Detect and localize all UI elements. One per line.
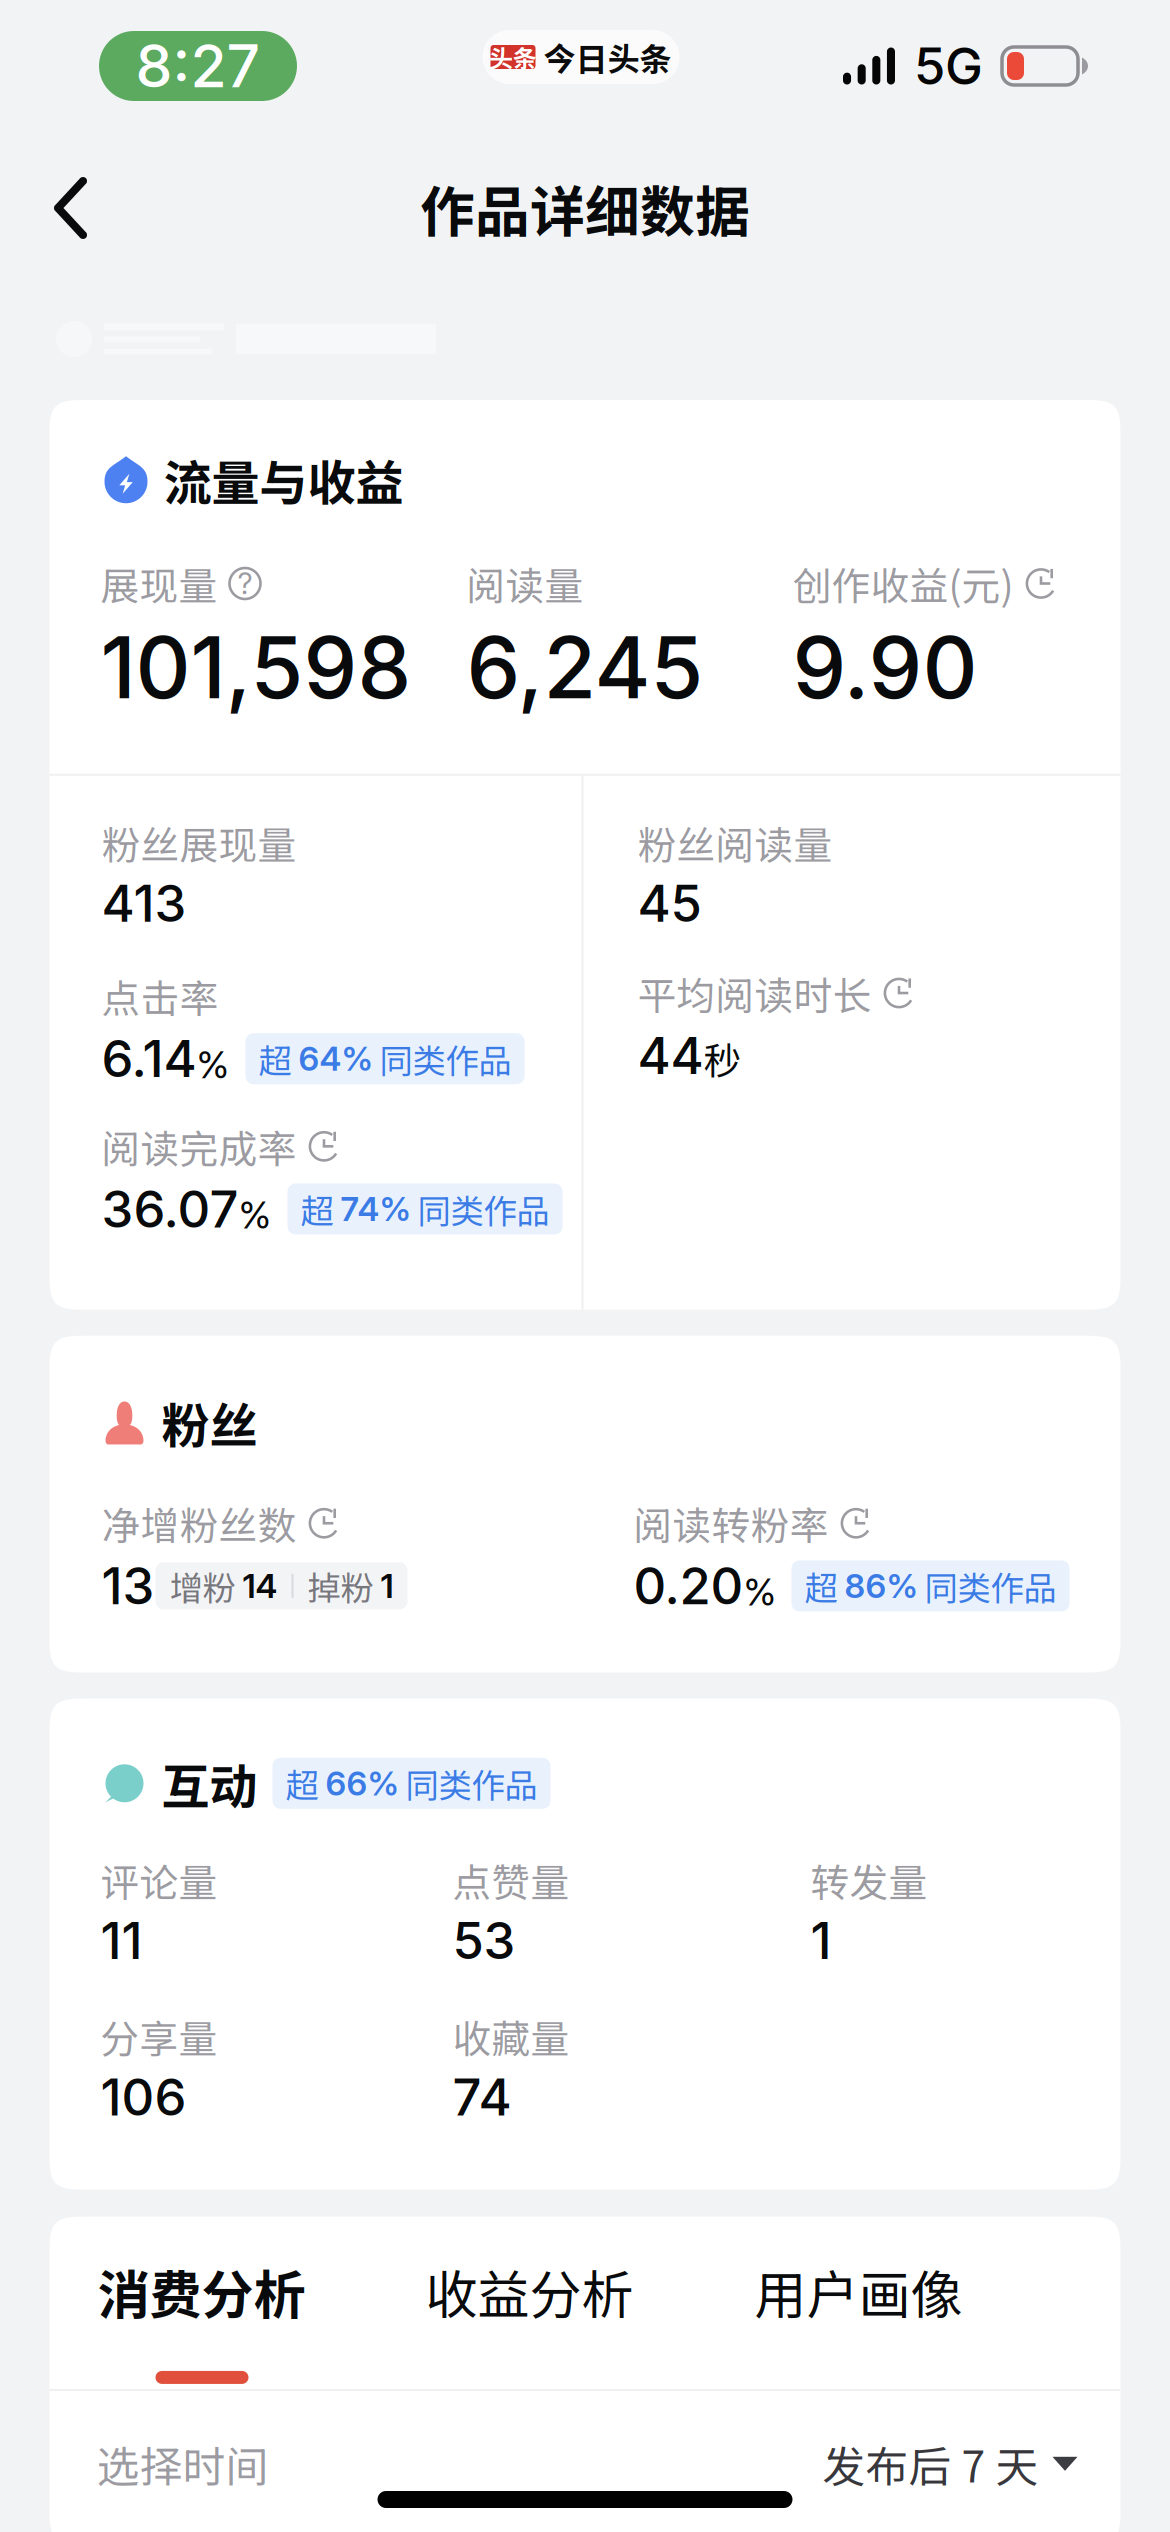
staticText: 头条 bbox=[489, 40, 537, 74]
staticText: % bbox=[238, 1192, 271, 1238]
staticText: 创作收益(元) bbox=[792, 555, 1013, 611]
staticText: 同类作品 bbox=[417, 1185, 549, 1233]
staticText: 平均阅读时长 bbox=[637, 965, 871, 1021]
staticText: 选择时间 bbox=[96, 2433, 268, 2495]
staticText: 今日头条 bbox=[543, 34, 671, 80]
staticText: 粉丝展现量 bbox=[101, 815, 296, 871]
staticText: 流量与收益 bbox=[163, 445, 403, 514]
button[interactable]: 用户画像 bbox=[754, 2254, 1083, 2384]
staticText: 评论量 bbox=[100, 1852, 217, 1908]
staticText: 44 bbox=[637, 1025, 703, 1086]
staticText: 阅读量 bbox=[466, 555, 583, 611]
staticText: 36.07 bbox=[101, 1178, 238, 1240]
staticText: 同类作品 bbox=[405, 1759, 537, 1807]
staticText: 超 bbox=[258, 1034, 291, 1083]
staticText: 秒 bbox=[703, 1031, 740, 1085]
button[interactable]: 发布后 7 天 bbox=[822, 2433, 1077, 2495]
staticText: 14 bbox=[242, 1566, 277, 1606]
staticText: % bbox=[743, 1569, 776, 1615]
staticText: 6.14 bbox=[101, 1028, 196, 1089]
staticText: 同类作品 bbox=[924, 1562, 1056, 1610]
staticText: 66% bbox=[325, 1763, 398, 1803]
staticText: 0.20 bbox=[633, 1555, 743, 1616]
staticText: 点击率 bbox=[101, 968, 218, 1024]
staticText: 74 bbox=[452, 2066, 511, 2128]
staticText: 1 bbox=[380, 1566, 393, 1606]
staticText: 粉丝阅读量 bbox=[637, 815, 832, 871]
staticText: 5G bbox=[914, 35, 983, 97]
staticText: 11 bbox=[100, 1910, 142, 1971]
staticText: 消费分析 bbox=[97, 2254, 305, 2329]
button[interactable]: Back bbox=[0, 155, 121, 261]
staticText: 作品详细数据 bbox=[420, 168, 750, 248]
staticText: 发布后 7 天 bbox=[822, 2433, 1038, 2495]
staticText: 86% bbox=[844, 1566, 917, 1606]
staticText: 阅读转粉率 bbox=[633, 1495, 828, 1551]
staticText: 6,245 bbox=[466, 615, 703, 719]
staticText: 9.90 bbox=[792, 615, 977, 719]
staticText: 8:27 bbox=[135, 30, 260, 101]
staticText: 101,598 bbox=[100, 615, 411, 719]
staticText: 74% bbox=[340, 1189, 410, 1229]
staticText: % bbox=[196, 1042, 229, 1087]
staticText: 用户画像 bbox=[754, 2254, 962, 2329]
staticText: 增粉 bbox=[169, 1562, 242, 1610]
staticText: 点赞量 bbox=[452, 1852, 569, 1908]
staticText: 收藏量 bbox=[452, 2008, 569, 2064]
staticText: 转发量 bbox=[810, 1852, 927, 1908]
staticText: ? bbox=[237, 566, 252, 601]
staticText: 净增粉丝数 bbox=[101, 1495, 296, 1551]
staticText: 收益分析 bbox=[425, 2254, 633, 2329]
staticText: 超 bbox=[804, 1562, 837, 1610]
staticText: 展现量 bbox=[100, 555, 217, 611]
staticText: 粉丝 bbox=[161, 1388, 257, 1457]
staticText: 53 bbox=[452, 1910, 515, 1971]
button[interactable]: 收益分析 bbox=[425, 2254, 754, 2384]
staticText: 64% bbox=[298, 1038, 372, 1079]
staticText: 阅读完成率 bbox=[101, 1118, 296, 1174]
staticText: 45 bbox=[637, 873, 701, 934]
staticText: 同类作品 bbox=[379, 1034, 511, 1083]
staticText: 13 bbox=[101, 1555, 154, 1616]
staticText: 超 bbox=[285, 1759, 318, 1807]
staticText: 掉粉 bbox=[307, 1562, 380, 1610]
staticText: 413 bbox=[101, 873, 186, 934]
staticText: 超 bbox=[300, 1185, 333, 1233]
staticText: 互动 bbox=[161, 1748, 257, 1818]
staticText: 分享量 bbox=[100, 2008, 217, 2064]
staticText: 106 bbox=[100, 2066, 186, 2128]
staticText: 1 bbox=[810, 1910, 831, 1971]
button[interactable]: 消费分析 bbox=[97, 2254, 425, 2384]
